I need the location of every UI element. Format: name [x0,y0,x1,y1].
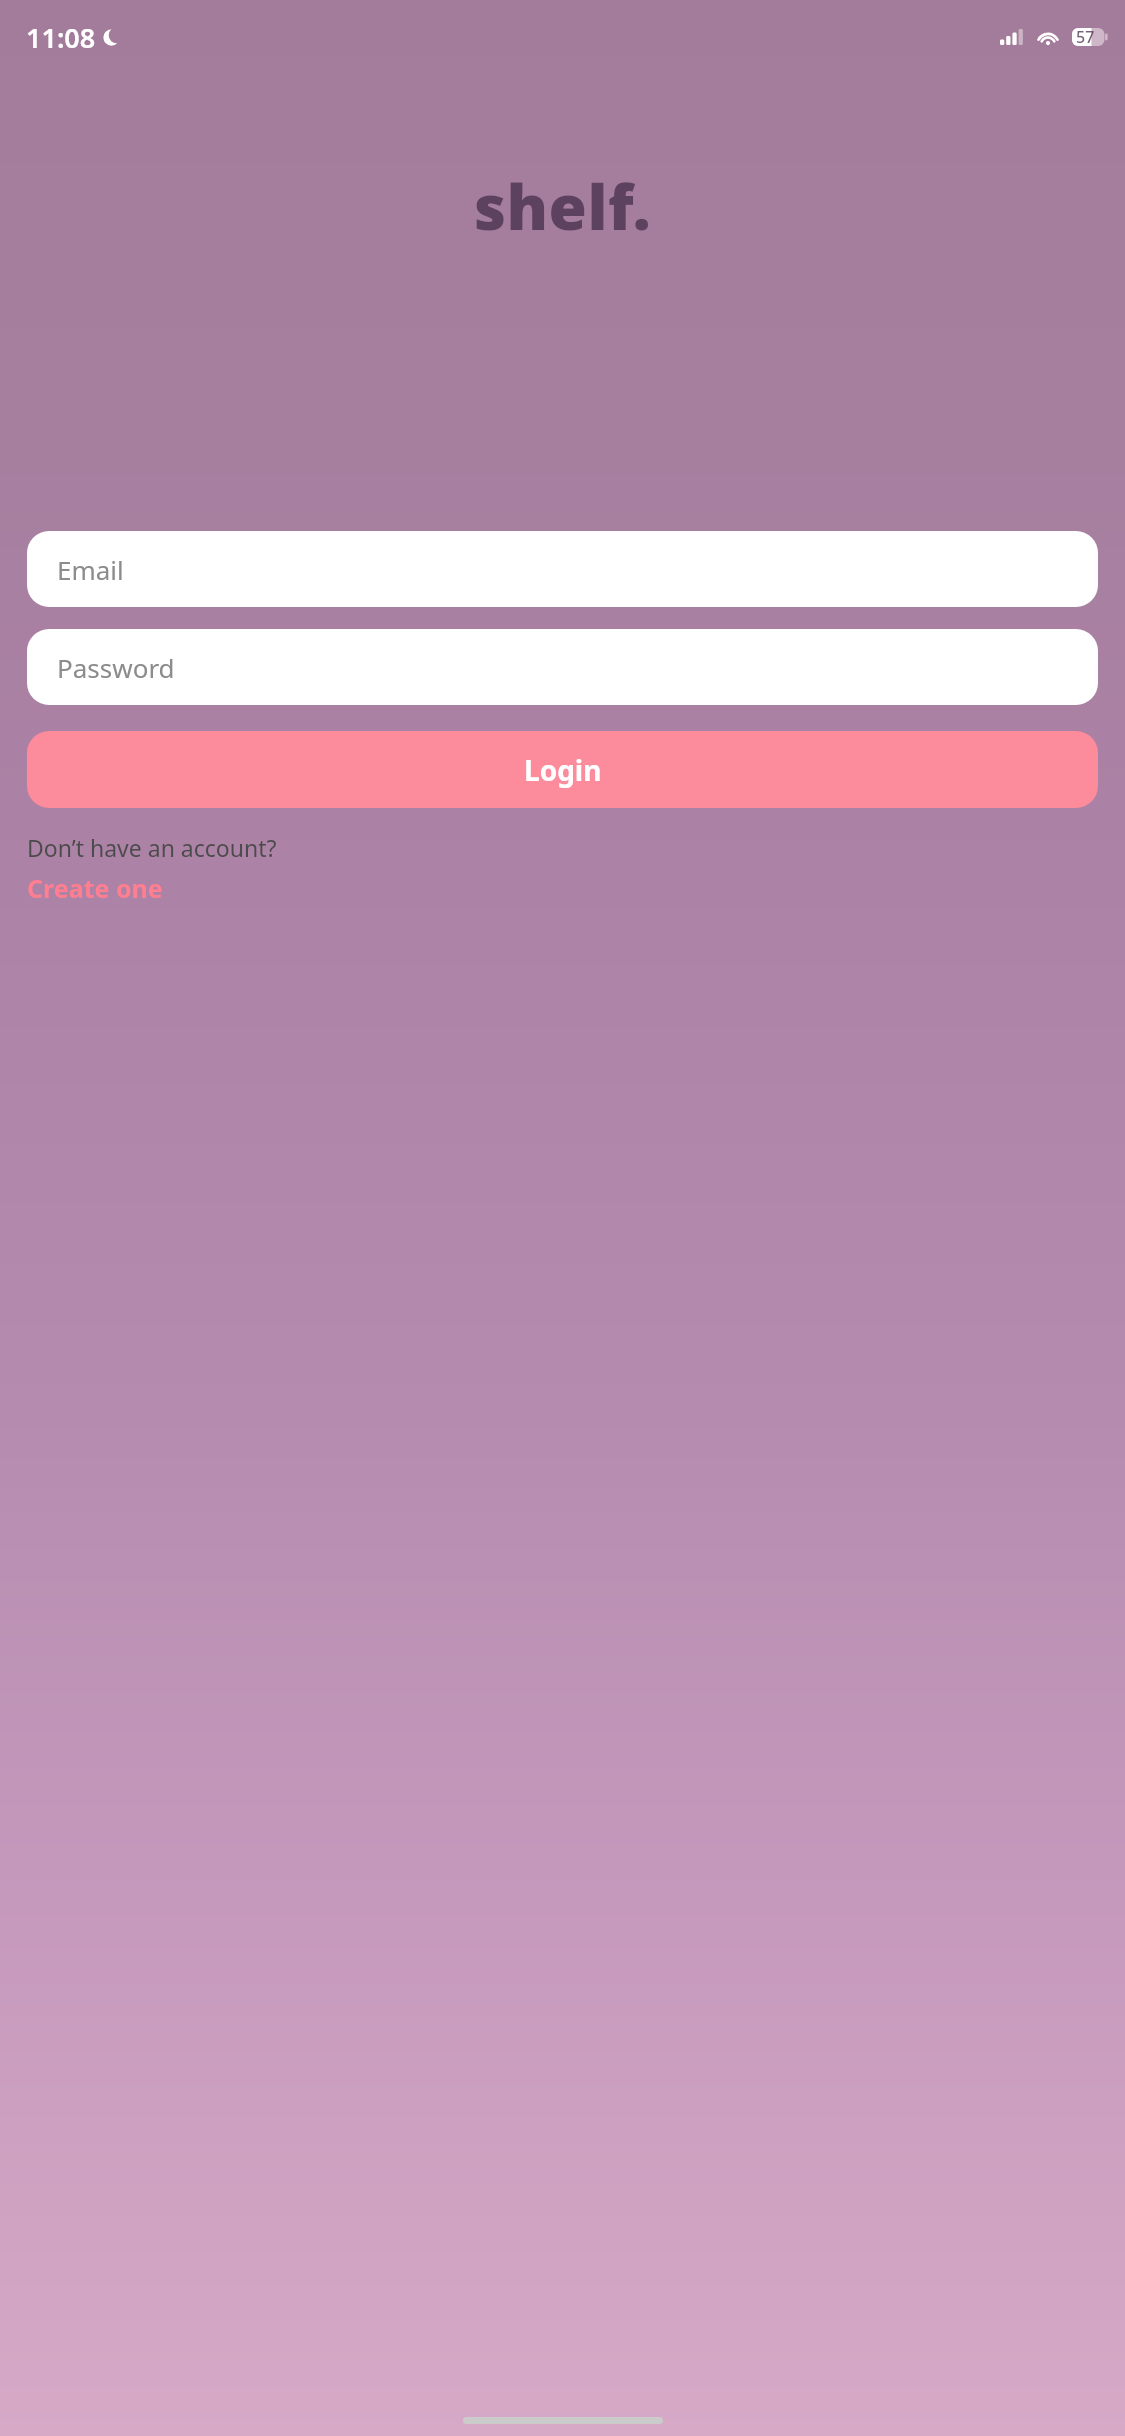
staticText: Don’t have an account? [27,832,277,863]
staticText: 11:08 [26,19,96,56]
staticText: Password [57,650,175,685]
button[interactable]: Email [27,531,1098,607]
button[interactable]: Create one [27,871,163,905]
staticText: Create one [27,871,163,905]
staticText: Email [57,552,124,587]
button[interactable]: Login [27,731,1098,808]
staticText: Login [524,751,602,789]
staticText: shelf. [474,164,652,248]
button[interactable]: Password [27,629,1098,705]
staticText: 57 [1076,26,1095,48]
